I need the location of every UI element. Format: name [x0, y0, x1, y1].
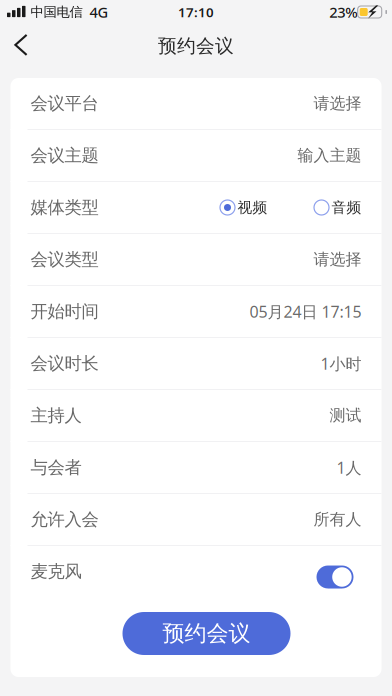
- staticText: 会议主题: [30, 145, 98, 166]
- button[interactable]: 允许入会: [10, 494, 381, 545]
- staticText: 音频: [331, 198, 361, 217]
- staticText: 麦克风: [30, 561, 81, 582]
- button[interactable]: 主持人: [10, 390, 381, 441]
- button[interactable]: 开始时间: [10, 286, 381, 337]
- button[interactable]: Microphone on: [316, 554, 361, 588]
- staticText: 请选择: [313, 250, 361, 269]
- staticText: 会议平台: [30, 93, 98, 114]
- staticText: 预约会议: [158, 34, 234, 57]
- button[interactable]: 与会者: [10, 442, 381, 493]
- staticText: 开始时间: [30, 301, 98, 322]
- staticText: 预约会议: [162, 620, 250, 647]
- staticText: 1小时: [320, 353, 361, 374]
- staticText: 17:10: [178, 3, 214, 21]
- staticText: 与会者: [30, 457, 81, 478]
- button[interactable]: 会议主题: [10, 130, 381, 181]
- button[interactable]: 会议时长: [10, 338, 381, 389]
- staticText: 会议类型: [30, 249, 98, 270]
- staticText: 4G: [89, 2, 108, 22]
- button[interactable]: 预约会议: [122, 612, 290, 655]
- staticText: 所有人: [313, 510, 361, 529]
- button[interactable]: 音频: [267, 198, 361, 217]
- staticText: 主持人: [30, 405, 81, 426]
- staticText: 中国电信: [30, 4, 82, 20]
- staticText: 测试: [329, 406, 361, 425]
- staticText: 允许入会: [30, 509, 98, 530]
- staticText: 请选择: [313, 94, 361, 113]
- staticText: 1人: [336, 457, 361, 478]
- button[interactable]: Back: [0, 25, 42, 67]
- staticText: 会议时长: [30, 353, 98, 374]
- button[interactable]: 视频: [219, 198, 267, 217]
- staticText: 05月24日 17:15: [249, 301, 361, 322]
- button[interactable]: 会议平台: [10, 78, 381, 129]
- button[interactable]: 会议类型: [10, 234, 381, 285]
- staticText: 23%: [329, 2, 357, 22]
- staticText: 媒体类型: [30, 197, 98, 218]
- staticText: 输入主题: [297, 146, 361, 165]
- staticText: 视频: [237, 198, 267, 217]
